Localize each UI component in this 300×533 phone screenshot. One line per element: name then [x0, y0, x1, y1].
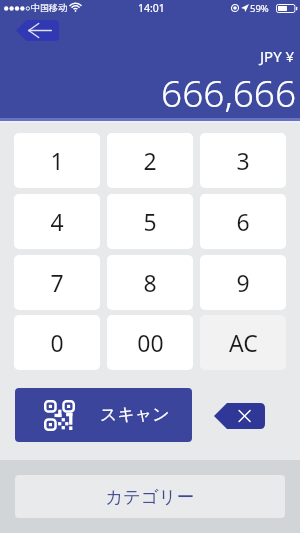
- button[interactable]: カテゴリー: [15, 475, 285, 518]
- staticText: 8: [143, 267, 157, 298]
- staticText: 9: [236, 267, 250, 298]
- button[interactable]: 7: [14, 255, 100, 310]
- staticText: 中国移动: [31, 2, 67, 13]
- button[interactable]: 1: [14, 133, 100, 188]
- staticText: AC: [229, 327, 258, 358]
- staticText: 00: [137, 327, 164, 358]
- staticText: 666,666: [161, 67, 297, 117]
- button[interactable]: 0: [14, 315, 100, 370]
- button[interactable]: Back: [16, 20, 59, 41]
- button[interactable]: 8: [107, 255, 193, 310]
- staticText: 0: [50, 327, 64, 358]
- staticText: 6: [236, 206, 250, 237]
- staticText: JPY ¥: [260, 46, 295, 66]
- staticText: 3: [236, 145, 250, 176]
- button[interactable]: 3: [200, 133, 286, 188]
- button[interactable]: 6: [200, 194, 286, 249]
- button[interactable]: スキャン: [15, 388, 192, 442]
- staticText: 1: [50, 145, 64, 176]
- staticText: 5: [143, 206, 157, 237]
- staticText: カテゴリー: [105, 486, 195, 508]
- button[interactable]: 2: [107, 133, 193, 188]
- button[interactable]: AC: [200, 315, 286, 370]
- staticText: 59%: [250, 2, 269, 15]
- staticText: 4: [50, 206, 64, 237]
- staticText: スキャン: [100, 404, 170, 425]
- staticText: 2: [143, 145, 157, 176]
- staticText: 14:01: [138, 1, 165, 15]
- button[interactable]: 00: [107, 315, 193, 370]
- button[interactable]: 9: [200, 255, 286, 310]
- button[interactable]: Delete: [214, 403, 265, 429]
- button[interactable]: 4: [14, 194, 100, 249]
- button[interactable]: 5: [107, 194, 193, 249]
- staticText: 7: [50, 267, 64, 298]
